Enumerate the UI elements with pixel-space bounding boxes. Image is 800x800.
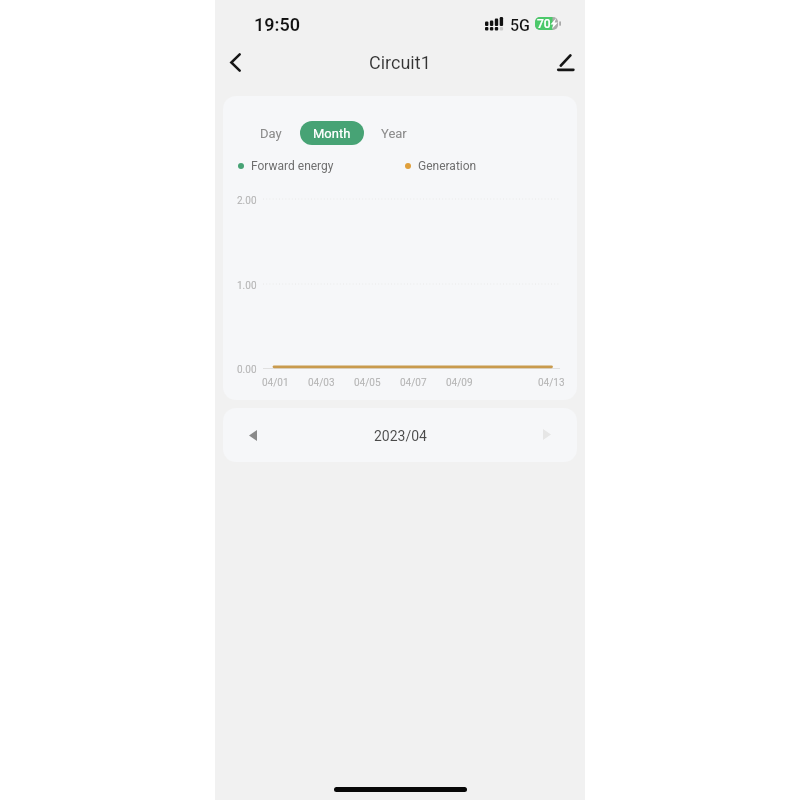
staticText: Circuit1: [369, 52, 431, 73]
staticText: Day: [260, 126, 282, 141]
staticText: 2.00: [237, 195, 257, 207]
staticText: 0.00: [237, 364, 257, 376]
staticText: 04/09: [446, 377, 473, 389]
button[interactable]: Previous month: [233, 415, 273, 455]
staticText: 04/03: [308, 377, 335, 389]
button[interactable]: Edit: [544, 41, 588, 85]
button[interactable]: Day: [247, 121, 295, 145]
staticText: 1.00: [237, 280, 257, 292]
staticText: 04/13: [538, 377, 565, 389]
staticText: Month: [313, 126, 351, 141]
button[interactable]: Year: [368, 121, 420, 145]
staticText: 2023/04: [374, 428, 427, 444]
button[interactable]: Month: [300, 121, 364, 145]
staticText: Generation: [418, 159, 477, 173]
staticText: Forward energy: [251, 159, 334, 173]
staticText: 19:50: [254, 14, 301, 35]
staticText: 5G: [510, 16, 530, 35]
button[interactable]: Next month: [527, 414, 567, 454]
staticText: Year: [381, 126, 407, 141]
staticText: 04/05: [354, 377, 381, 389]
staticText: 70: [537, 17, 551, 30]
staticText: 04/07: [400, 377, 427, 389]
button[interactable]: Back: [213, 40, 257, 84]
staticText: 04/01: [262, 377, 289, 389]
